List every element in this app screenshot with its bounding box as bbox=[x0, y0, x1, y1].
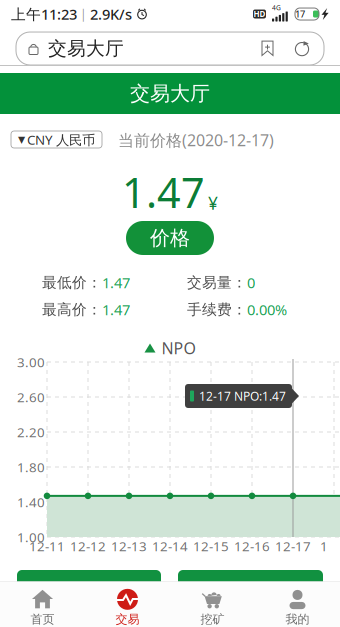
staticText: 1.40 bbox=[17, 493, 45, 511]
staticText: 手续费： bbox=[187, 300, 247, 318]
staticText: 当前价格(2020-12-17) bbox=[118, 129, 274, 151]
button[interactable]: Buy bbox=[17, 570, 161, 606]
staticText: 最低价： bbox=[42, 273, 102, 291]
staticText: 1 bbox=[320, 537, 328, 555]
staticText: 3.00 bbox=[17, 353, 45, 371]
button[interactable]: Add bookmark bbox=[257, 40, 278, 56]
staticText: 1.47 bbox=[102, 300, 130, 319]
button[interactable]: 首页 bbox=[0, 582, 85, 627]
button[interactable]: Sell bbox=[178, 570, 323, 606]
staticText: CNY 人民币 bbox=[27, 131, 95, 148]
button[interactable]: 我的 bbox=[255, 582, 340, 627]
staticText: 1.47 bbox=[122, 165, 205, 219]
staticText: 12-17 NPO:1.47 bbox=[199, 388, 286, 404]
staticText: 交易大厅 bbox=[130, 81, 210, 106]
staticText: 4G bbox=[272, 3, 281, 12]
staticText: 上午11:23 bbox=[11, 4, 77, 24]
staticText: 我的 bbox=[285, 612, 309, 626]
staticText: 最高价： bbox=[42, 300, 102, 318]
button[interactable]: ▼ bbox=[11, 131, 102, 148]
button[interactable]: 价格 bbox=[126, 221, 214, 255]
staticText: 1.80 bbox=[17, 458, 45, 476]
staticText: 12-16 bbox=[234, 537, 270, 555]
button[interactable]: Reload page bbox=[292, 40, 312, 56]
staticText: 交易大厅 bbox=[48, 37, 124, 60]
staticText: 2.20 bbox=[17, 423, 45, 441]
staticText: 交易量： bbox=[187, 273, 247, 291]
staticText: 12-12 bbox=[70, 537, 106, 555]
staticText: 2.60 bbox=[17, 388, 45, 406]
staticText: 首页 bbox=[30, 612, 54, 626]
staticText: | bbox=[77, 6, 90, 22]
staticText: NPO bbox=[161, 337, 195, 359]
staticText: 0.00% bbox=[247, 300, 287, 319]
staticText: 0 bbox=[247, 273, 255, 292]
staticText: 12-13 bbox=[111, 537, 147, 555]
staticText: 挖矿 bbox=[200, 612, 224, 626]
staticText: 12-14 bbox=[152, 537, 188, 555]
staticText: 1.00 bbox=[17, 528, 45, 546]
staticText: HD bbox=[253, 9, 265, 19]
staticText: ¥ bbox=[208, 191, 218, 214]
staticText: 2.9K/s bbox=[90, 4, 132, 24]
staticText: 12-15 bbox=[193, 537, 229, 555]
staticText: 12-17 bbox=[275, 537, 311, 555]
button[interactable]: 交易 bbox=[85, 582, 170, 627]
staticText: 交易 bbox=[115, 612, 139, 626]
staticText: ▼ bbox=[18, 134, 25, 145]
staticText: 价格 bbox=[150, 226, 190, 250]
staticText: 12-11 bbox=[29, 537, 65, 555]
button[interactable]: 挖矿 bbox=[170, 582, 255, 627]
staticText: 17 bbox=[295, 8, 305, 20]
staticText: 1.47 bbox=[102, 273, 130, 292]
